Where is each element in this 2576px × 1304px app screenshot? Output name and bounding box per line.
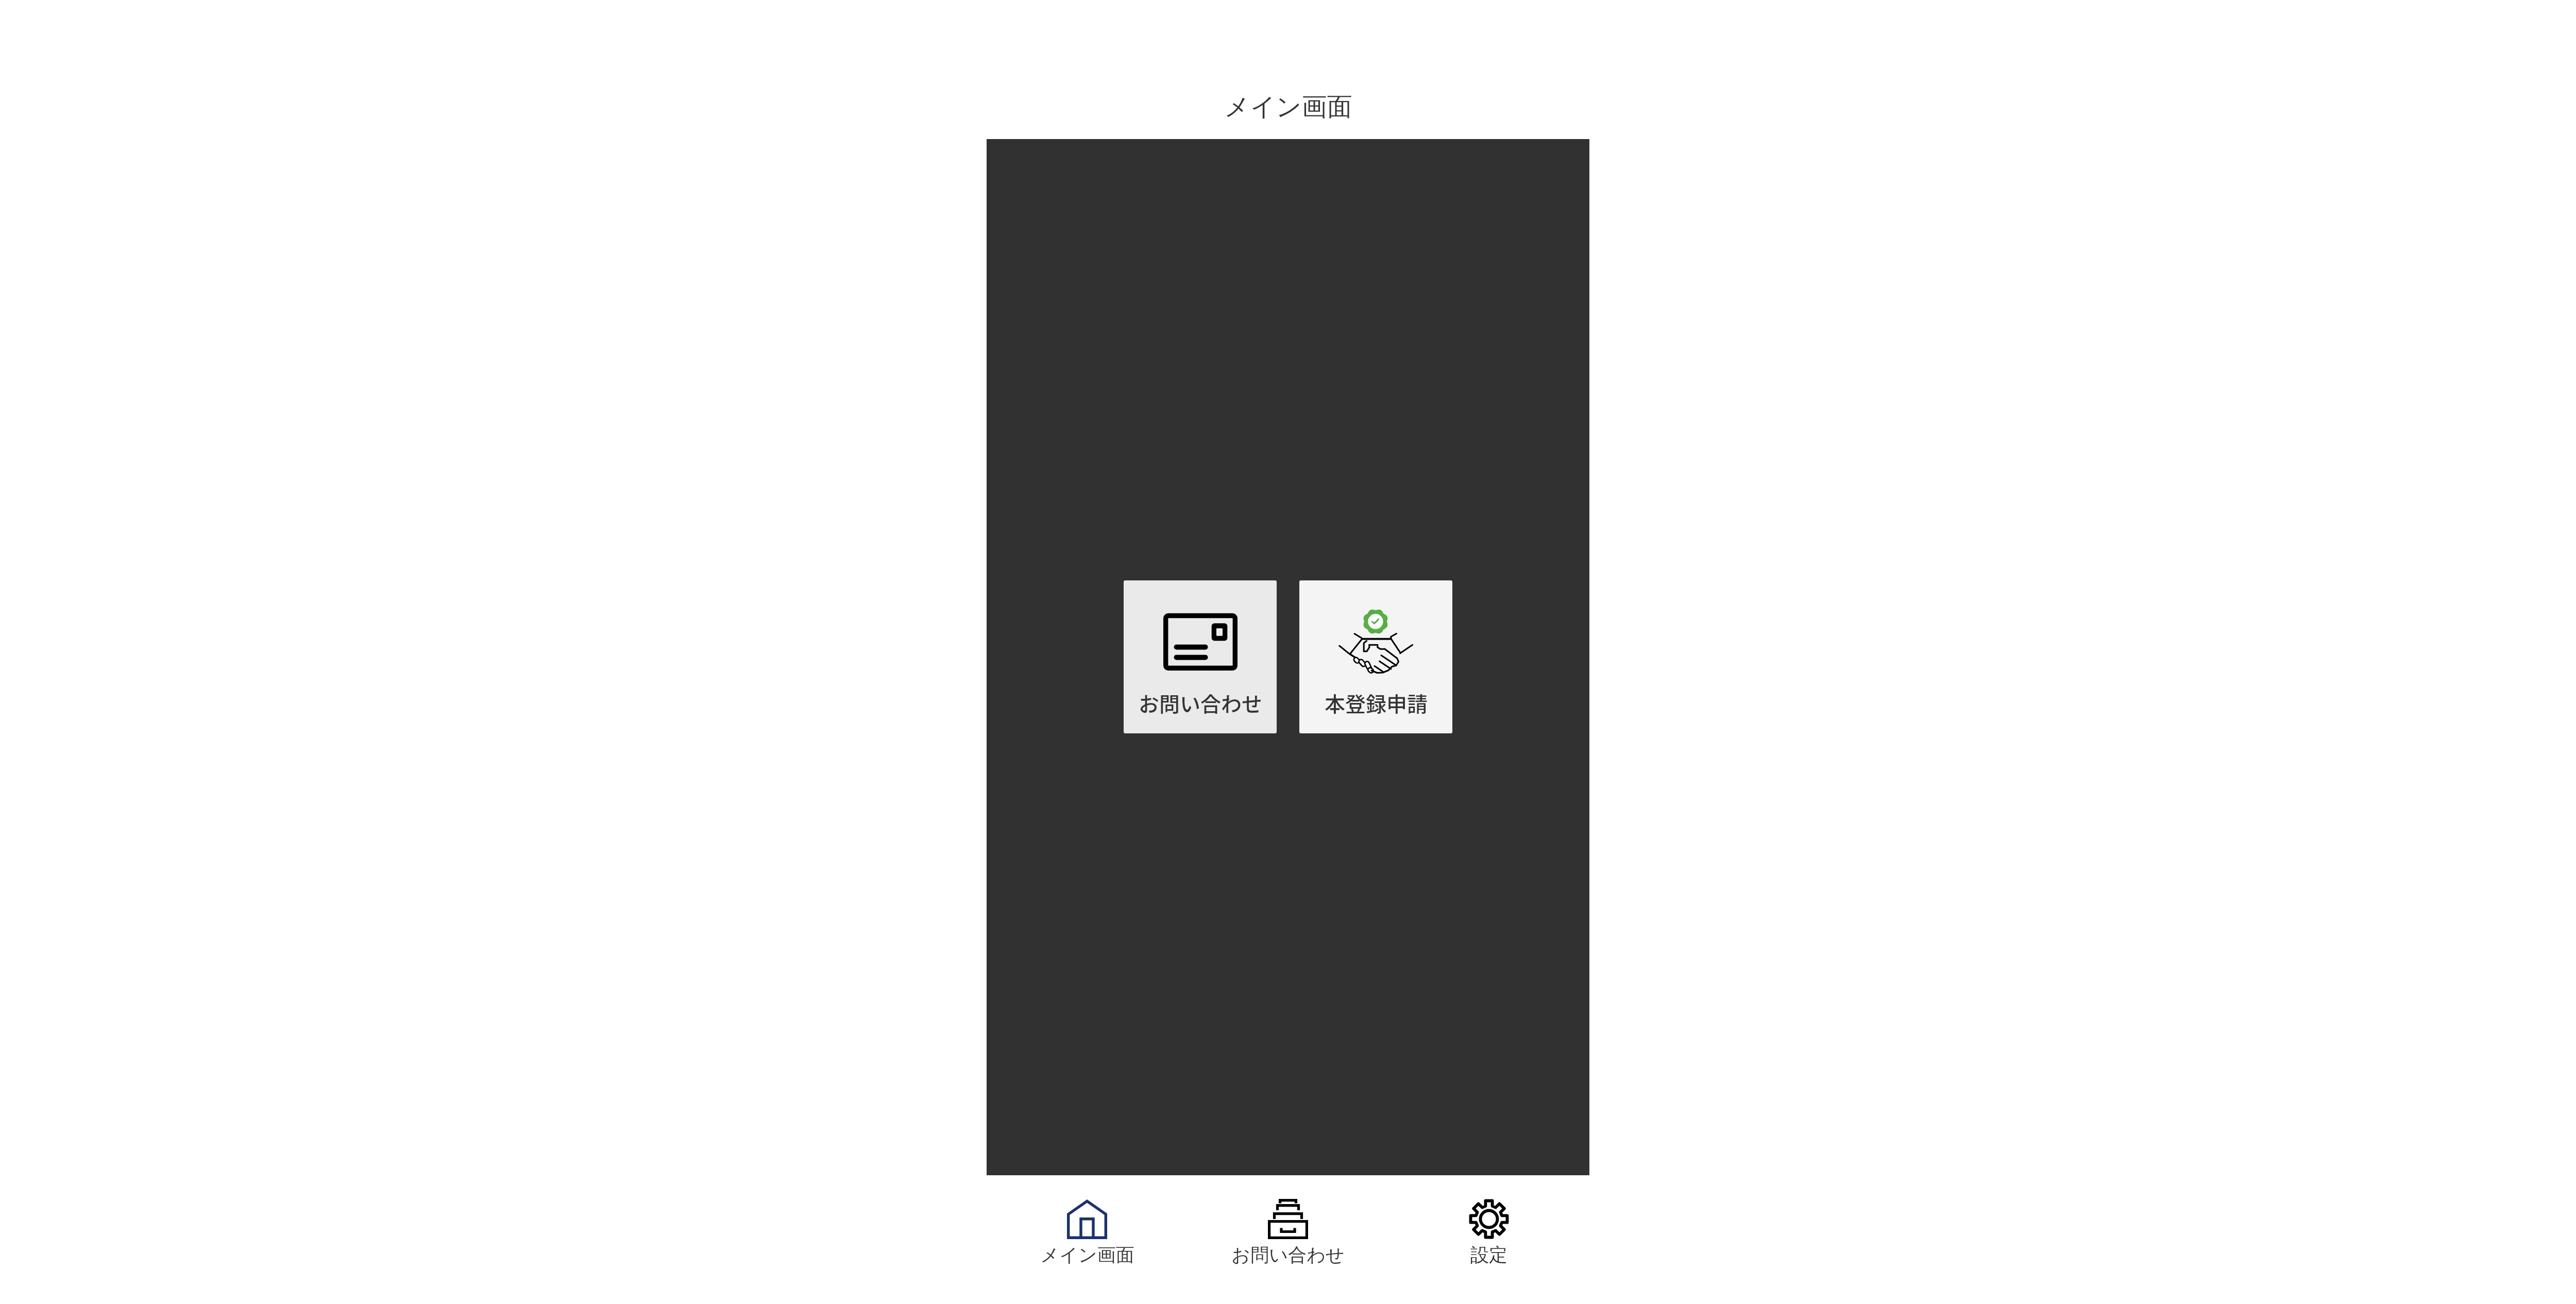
staticText: 本登録申請 (1325, 688, 1428, 718)
staticText: メイン画面 (1224, 91, 1352, 123)
button[interactable]: 本登録申請 (1299, 580, 1452, 733)
staticText: 設定 (1470, 1243, 1507, 1266)
staticText: お問い合わせ (1231, 1243, 1345, 1266)
button[interactable]: Settings (1388, 1190, 1589, 1282)
other: Home (1067, 1199, 1107, 1239)
other: Inbox (1268, 1199, 1308, 1239)
button[interactable]: Inbox (1188, 1190, 1388, 1282)
staticText: お問い合わせ (1139, 688, 1262, 718)
button[interactable]: Home (987, 1190, 1188, 1282)
button[interactable]: お問い合わせ (1124, 580, 1277, 733)
staticText: メイン画面 (1040, 1243, 1134, 1266)
other: Settings (1469, 1199, 1509, 1239)
